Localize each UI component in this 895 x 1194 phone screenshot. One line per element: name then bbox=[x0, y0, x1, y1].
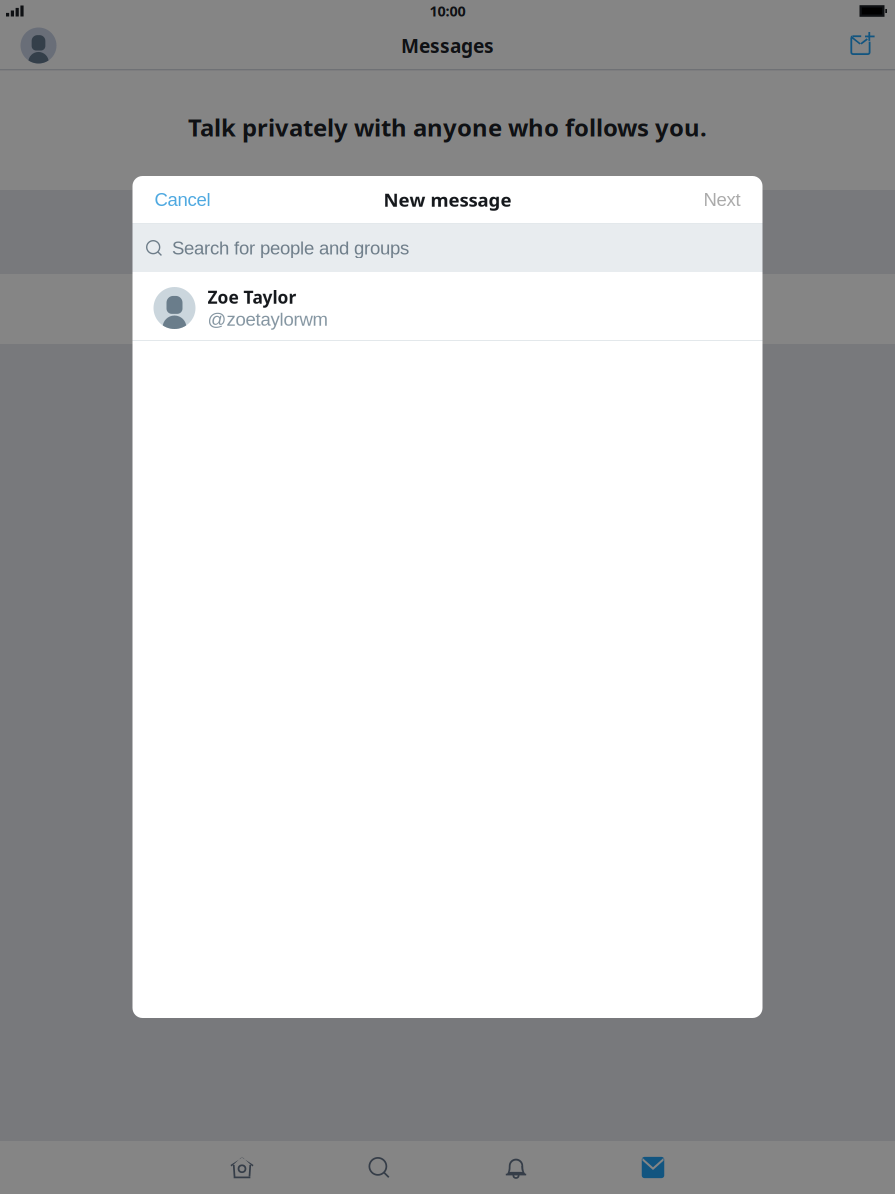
button[interactable]: Cancel bbox=[132, 176, 232, 223]
staticText: Messages bbox=[401, 32, 494, 58]
staticText: @zoetaylorwm bbox=[207, 309, 327, 330]
staticText: New message bbox=[383, 187, 511, 212]
staticText: Cancel bbox=[154, 189, 210, 210]
button[interactable]: Zoe Taylor bbox=[132, 272, 762, 340]
button[interactable]: Home bbox=[173, 1141, 310, 1194]
button[interactable]: Messages bbox=[584, 1141, 721, 1194]
staticText: Search for people and groups bbox=[172, 238, 409, 258]
staticText: Zoe Taylor bbox=[207, 285, 296, 309]
button[interactable]: New message bbox=[830, 22, 895, 69]
button[interactable]: Profile bbox=[0, 22, 77, 69]
staticText: 10:00 bbox=[429, 1, 465, 21]
button[interactable]: Search bbox=[310, 1141, 447, 1194]
button[interactable]: Next bbox=[681, 176, 762, 223]
staticText: Next bbox=[703, 189, 740, 210]
button[interactable]: Notifications bbox=[447, 1141, 584, 1194]
staticText: Talk privately with anyone who follows y… bbox=[188, 111, 707, 143]
